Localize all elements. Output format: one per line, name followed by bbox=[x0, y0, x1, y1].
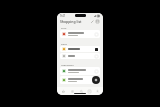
button[interactable]: Toggle item bbox=[60, 53, 100, 59]
button[interactable]: Toggle item bbox=[95, 33, 98, 36]
button[interactable]: Toggle item bbox=[95, 55, 98, 58]
button[interactable]: Add item bbox=[92, 76, 100, 84]
button[interactable]: Search bbox=[77, 89, 85, 93]
button[interactable]: Recipes bbox=[85, 89, 93, 93]
staticText: 9:41 bbox=[60, 14, 66, 18]
staticText: Dairy bbox=[61, 42, 68, 45]
button[interactable]: Lists bbox=[68, 89, 77, 93]
button[interactable]: Toggle item bbox=[60, 30, 100, 38]
button[interactable]: More options bbox=[95, 19, 100, 24]
button[interactable]: Profile bbox=[93, 89, 101, 93]
button[interactable]: Toggle item bbox=[60, 46, 100, 52]
button[interactable]: Toggle item bbox=[60, 76, 100, 84]
button[interactable]: Toggle item bbox=[95, 70, 98, 73]
staticText: Shopping list bbox=[60, 19, 82, 24]
button[interactable]: Toggle item bbox=[95, 48, 98, 51]
button[interactable]: Toggle item bbox=[95, 79, 98, 82]
button[interactable]: Toggle item bbox=[60, 67, 100, 75]
staticText: Fruit bbox=[61, 26, 67, 29]
button[interactable]: Edit list bbox=[90, 19, 95, 24]
button[interactable]: Home bbox=[59, 89, 68, 93]
staticText: Vegetables bbox=[61, 63, 74, 66]
